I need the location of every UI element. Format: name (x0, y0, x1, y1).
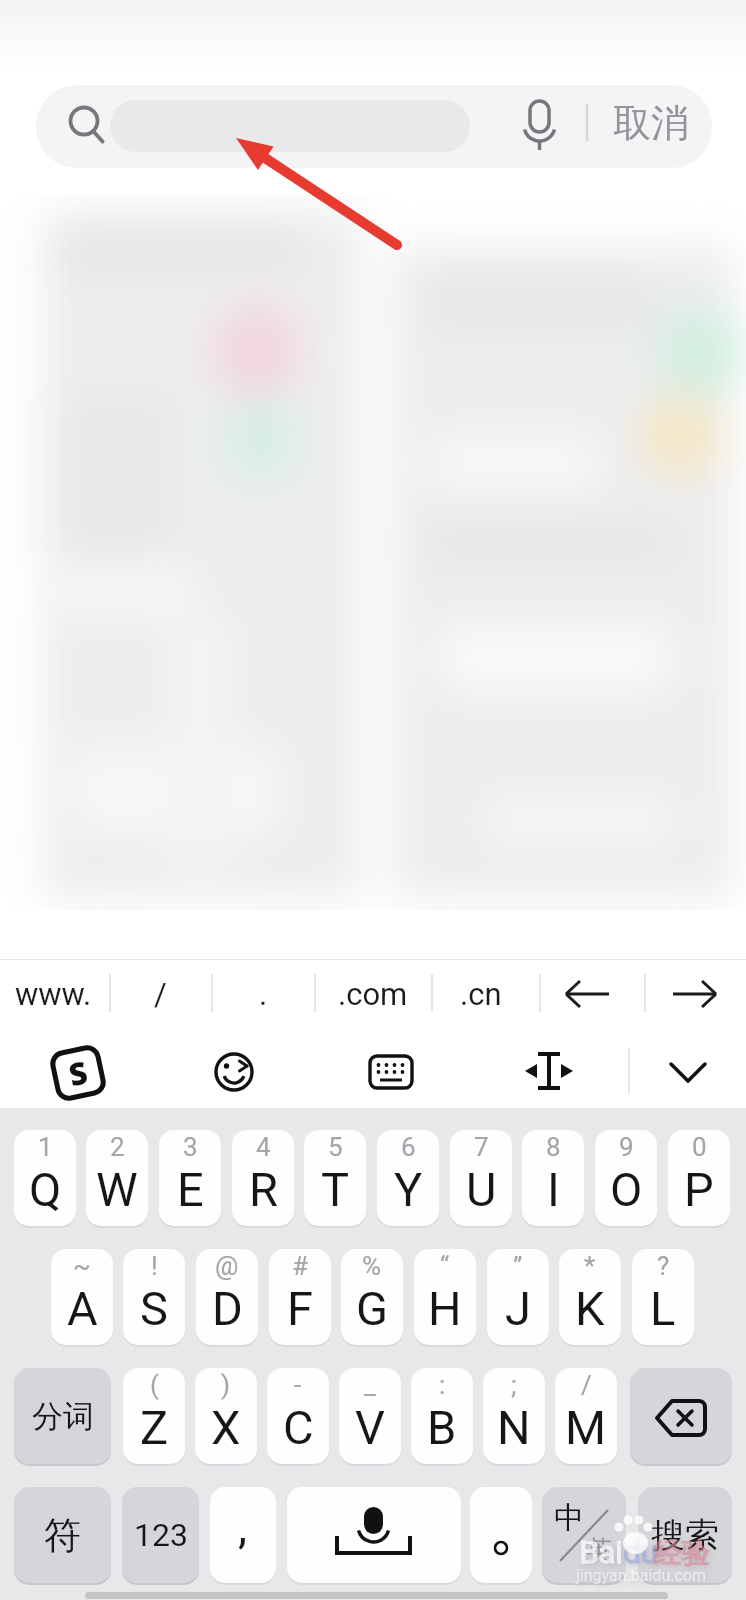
staticText: 6 (401, 1132, 416, 1162)
staticText: # (292, 1251, 309, 1281)
button[interactable]: “ (414, 1249, 476, 1345)
button[interactable]: 123 (122, 1487, 199, 1583)
staticText: 1 (38, 1132, 53, 1162)
button[interactable]: ” (487, 1249, 549, 1345)
staticText: T (321, 1162, 350, 1217)
button[interactable] (540, 962, 645, 1026)
button[interactable] (630, 1368, 732, 1464)
button[interactable]: . (211, 962, 315, 1026)
button[interactable]: _ (339, 1368, 401, 1464)
staticText: ” (513, 1251, 523, 1281)
button[interactable]: : (411, 1368, 473, 1464)
staticText: Bai (579, 1534, 623, 1570)
button[interactable]: 1 (14, 1130, 76, 1226)
staticText: ~ (73, 1251, 91, 1281)
button[interactable]: www. (1, 962, 105, 1026)
button[interactable]: 分词 (14, 1368, 111, 1464)
staticText: J (505, 1281, 531, 1336)
button[interactable]: 中 (542, 1487, 626, 1583)
staticText: K (575, 1281, 605, 1336)
staticText: U (466, 1162, 497, 1217)
staticText: “ (440, 1251, 450, 1281)
button[interactable]: 7 (450, 1130, 512, 1226)
button[interactable]: 8 (522, 1130, 584, 1226)
button[interactable]: ? (632, 1249, 694, 1345)
button[interactable]: 0 (668, 1130, 730, 1226)
staticText: du (623, 1534, 658, 1570)
button[interactable]: .cn (429, 962, 533, 1026)
staticText: 经验 (653, 1536, 709, 1571)
staticText: .com (338, 976, 408, 1012)
button[interactable] (36, 85, 712, 168)
staticText: P (684, 1162, 714, 1217)
button[interactable]: 2 (86, 1130, 148, 1226)
staticText: A (67, 1281, 98, 1336)
button[interactable]: .com (321, 962, 425, 1026)
staticText: ! (151, 1251, 158, 1281)
button[interactable]: / (108, 962, 212, 1026)
staticText: / (581, 1370, 592, 1400)
button[interactable]: S (47, 1042, 109, 1104)
staticText: jingyan.baidu.com (576, 1566, 706, 1585)
staticText: M (565, 1400, 607, 1455)
staticText: 2 (110, 1132, 125, 1162)
staticText: @ (215, 1251, 239, 1281)
staticText: 搜索 (651, 1514, 719, 1557)
staticText: 4 (256, 1132, 271, 1162)
staticText: H (428, 1281, 462, 1336)
button[interactable]: / (555, 1368, 617, 1464)
button[interactable]: 6 (377, 1130, 439, 1226)
button[interactable]: ( (123, 1368, 185, 1464)
button[interactable]: ! (123, 1249, 185, 1345)
button[interactable]: 3 (159, 1130, 221, 1226)
staticText: 0 (692, 1132, 707, 1162)
staticText: S (140, 1281, 168, 1336)
button[interactable] (660, 1040, 716, 1096)
staticText: R (249, 1162, 278, 1217)
staticText: www. (15, 976, 92, 1012)
staticText: 取消 (613, 99, 689, 147)
button[interactable]: 搜索 (638, 1487, 732, 1583)
staticText: 9 (619, 1132, 634, 1162)
staticText: % (362, 1251, 382, 1281)
staticText: Q (29, 1162, 62, 1217)
staticText: E (177, 1162, 204, 1217)
staticText: : (439, 1370, 446, 1400)
staticText: / (154, 976, 167, 1012)
button[interactable]: ~ (51, 1249, 113, 1345)
button[interactable] (287, 1487, 461, 1583)
button[interactable]: % (341, 1249, 403, 1345)
button[interactable]: 4 (232, 1130, 294, 1226)
button[interactable]: 符 (14, 1487, 111, 1583)
button[interactable]: 5 (304, 1130, 366, 1226)
staticText: 英 (586, 1534, 612, 1567)
staticText: L (650, 1281, 676, 1336)
button[interactable]: ; (483, 1368, 545, 1464)
button[interactable]: 9 (595, 1130, 657, 1226)
button[interactable]: ) (195, 1368, 257, 1464)
staticText: O (610, 1162, 643, 1217)
button[interactable] (645, 962, 746, 1026)
staticText: X (211, 1400, 241, 1455)
button[interactable]: @ (196, 1249, 258, 1345)
staticText: 7 (474, 1132, 489, 1162)
button[interactable]: # (269, 1249, 331, 1345)
staticText: V (355, 1400, 385, 1455)
button[interactable] (521, 1040, 577, 1096)
staticText: B (427, 1400, 457, 1455)
button[interactable] (364, 1040, 420, 1096)
button[interactable]: , (210, 1487, 276, 1583)
button[interactable] (210, 1040, 266, 1096)
staticText: ( (150, 1370, 159, 1400)
staticText: S (65, 1051, 91, 1095)
staticText: C (283, 1400, 314, 1455)
staticText: D (212, 1281, 243, 1336)
staticText: I (547, 1162, 560, 1217)
staticText: 5 (328, 1132, 343, 1162)
button[interactable]: - (267, 1368, 329, 1464)
staticText: ; (511, 1370, 517, 1400)
button[interactable] (470, 1487, 532, 1583)
staticText: 8 (546, 1132, 561, 1162)
button[interactable]: * (559, 1249, 621, 1345)
button[interactable] (608, 90, 698, 156)
